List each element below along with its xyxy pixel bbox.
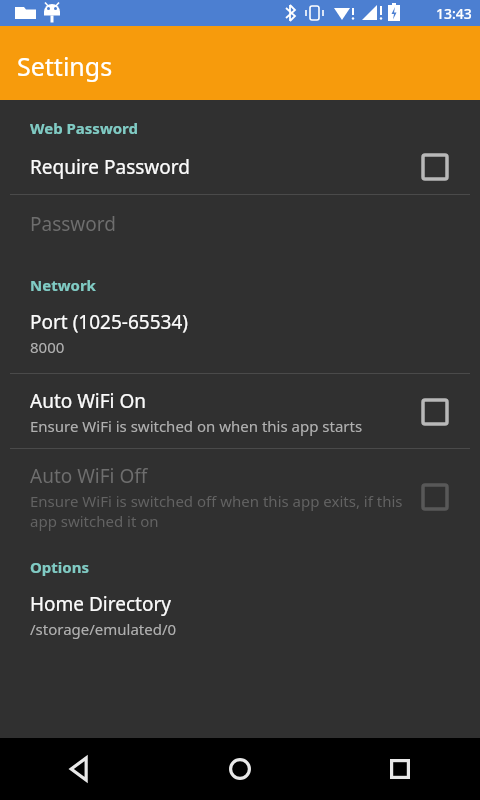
- button[interactable]: Home Directory: [0, 577, 480, 639]
- staticText: Ensure WiFi is switched on when this app…: [30, 416, 363, 436]
- staticText: Home Directory: [30, 591, 171, 617]
- button[interactable]: Back: [0, 738, 160, 800]
- staticText: Port (1025-65534): [30, 309, 188, 335]
- button[interactable]: Require Password: [0, 138, 480, 182]
- staticText: Network: [30, 275, 96, 295]
- staticText: Password: [30, 211, 116, 237]
- staticText: Ensure WiFi is switched off when this ap…: [30, 491, 408, 531]
- button[interactable]: Port (1025-65534): [0, 295, 480, 357]
- staticText: Web Password: [30, 118, 139, 138]
- staticText: Settings: [17, 49, 113, 83]
- button[interactable]: Recent apps: [320, 738, 480, 800]
- button[interactable]: Auto WiFi Off: [0, 449, 480, 531]
- button[interactable]: Require Password: [420, 152, 450, 182]
- staticText: 8000: [30, 337, 65, 357]
- button[interactable]: Auto WiFi On: [420, 397, 450, 427]
- button[interactable]: Auto WiFi Off: [420, 482, 450, 512]
- button[interactable]: Password: [0, 195, 480, 237]
- staticText: Auto WiFi On: [30, 388, 147, 414]
- staticText: 13:43: [436, 4, 472, 23]
- staticText: Require Password: [30, 154, 190, 180]
- button[interactable]: Home: [160, 738, 320, 800]
- staticText: Options: [30, 557, 89, 577]
- staticText: /storage/emulated/0: [30, 619, 177, 639]
- button[interactable]: Auto WiFi On: [0, 374, 480, 436]
- staticText: Auto WiFi Off: [30, 463, 148, 489]
